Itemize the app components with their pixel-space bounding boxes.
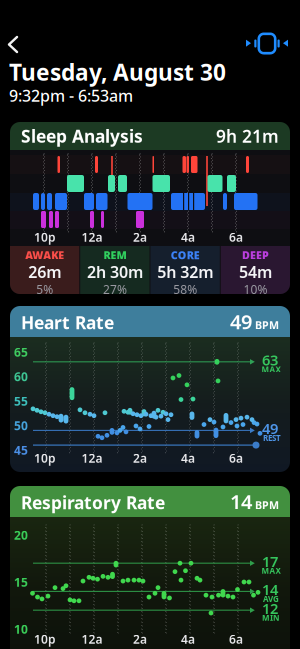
staticText: 14 — [230, 488, 252, 515]
staticText: CORE — [171, 248, 200, 262]
staticText: BPM — [252, 498, 279, 512]
staticText: 14 — [262, 580, 278, 599]
staticText: BPM — [252, 318, 279, 332]
staticText: 4a — [181, 631, 195, 647]
staticText: 12a — [81, 229, 102, 245]
staticText: AVG — [263, 594, 279, 604]
button[interactable]: Back — [4, 34, 24, 55]
staticText: 6a — [229, 450, 243, 466]
staticText: 45 — [14, 442, 28, 458]
staticText: 5% — [36, 281, 53, 297]
staticText: 49 — [230, 308, 252, 335]
staticText: 10p — [34, 631, 56, 647]
staticText: 9:32pm - 6:53am — [9, 85, 133, 106]
staticText: 10 — [14, 621, 28, 637]
staticText: REST — [263, 433, 281, 443]
staticText: 10p — [34, 229, 56, 245]
staticText: 10% — [243, 281, 267, 297]
staticText: 4a — [181, 229, 195, 245]
staticText: MAX — [261, 364, 280, 375]
staticText: 27% — [103, 281, 127, 297]
staticText: Heart Rate — [21, 311, 114, 334]
staticText: REM — [103, 248, 126, 262]
staticText: 49 — [262, 419, 278, 438]
staticText: DEEP — [242, 248, 269, 262]
staticText: Tuesday, August 30 — [9, 57, 226, 87]
staticText: AWAKE — [25, 248, 64, 262]
staticText: Sleep Analysis — [21, 124, 143, 147]
staticText: 20 — [14, 527, 28, 543]
staticText: 2h 30m — [87, 261, 143, 282]
staticText: 10p — [34, 450, 56, 466]
staticText: 6a — [229, 229, 243, 245]
staticText: MIN — [262, 612, 280, 623]
staticText: 50 — [14, 417, 28, 433]
staticText: 54m — [239, 261, 272, 282]
staticText: 12a — [81, 450, 102, 466]
staticText: 4a — [181, 450, 195, 466]
staticText: 17 — [262, 551, 278, 571]
staticText: 2a — [133, 450, 147, 466]
staticText: 5h 32m — [157, 261, 213, 282]
staticText: 26m — [28, 261, 61, 282]
staticText: 12a — [81, 631, 102, 647]
button[interactable]: Apple Watch sync — [246, 31, 288, 56]
staticText: 15 — [14, 574, 28, 590]
staticText: 58% — [173, 281, 197, 297]
staticText: 60 — [14, 368, 28, 384]
staticText: 2a — [133, 631, 147, 647]
staticText: 6a — [229, 631, 243, 647]
staticText: 9h 21m — [216, 124, 279, 147]
staticText: 12 — [262, 598, 278, 618]
staticText: MAX — [261, 565, 280, 576]
staticText: 2a — [133, 229, 147, 245]
staticText: 65 — [14, 344, 28, 360]
staticText: Respiratory Rate — [21, 491, 165, 514]
staticText: 55 — [14, 393, 28, 409]
staticText: 63 — [262, 350, 278, 370]
